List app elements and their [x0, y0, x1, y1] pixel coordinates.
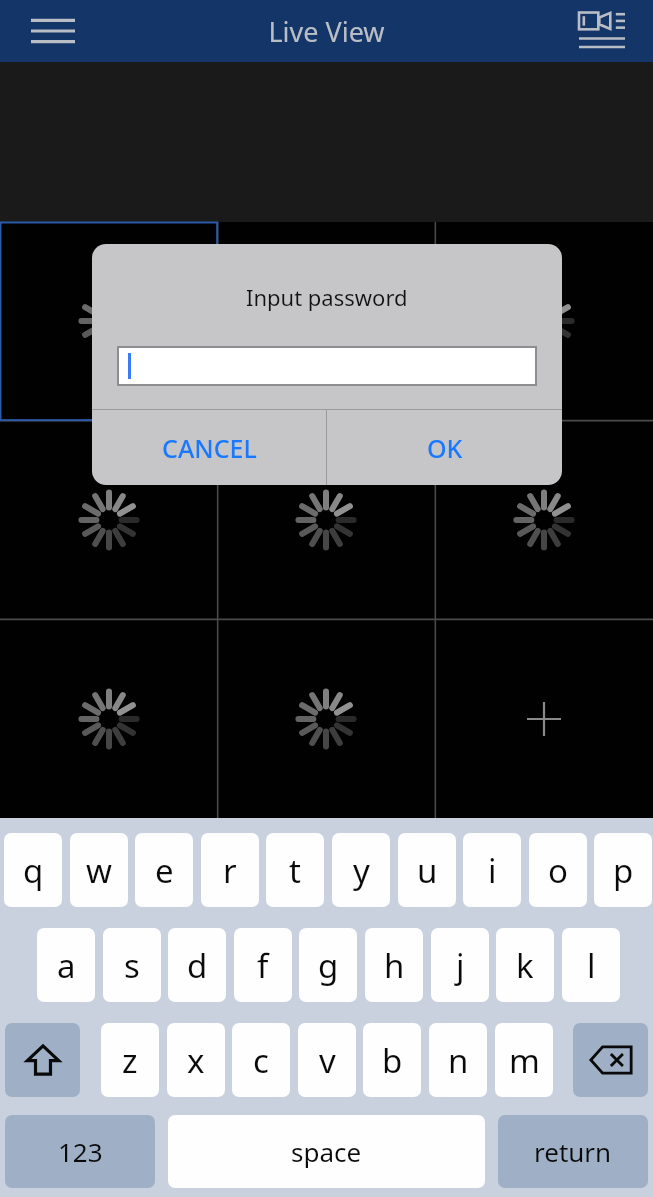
button[interactable]: p	[594, 833, 652, 907]
button[interactable]: e	[135, 833, 193, 907]
button[interactable]: 123	[5, 1115, 155, 1188]
staticText: space	[291, 1134, 362, 1169]
button[interactable]: CANCEL	[92, 410, 326, 485]
button[interactable]: v	[298, 1023, 356, 1097]
button[interactable]: a	[37, 928, 95, 1002]
button[interactable]: w	[70, 833, 128, 907]
button[interactable]: c	[232, 1023, 290, 1097]
staticText: z	[122, 1038, 138, 1083]
button[interactable]: space	[168, 1115, 485, 1188]
staticText: k	[516, 943, 534, 988]
staticText: g	[318, 943, 339, 988]
button[interactable]: x	[167, 1023, 225, 1097]
button[interactable]	[0, 420, 217, 619]
button[interactable]: Shift	[5, 1023, 80, 1097]
staticText: p	[613, 848, 634, 893]
staticText: CANCEL	[162, 431, 257, 465]
staticText: v	[319, 1038, 336, 1083]
button[interactable]: k	[496, 928, 554, 1002]
staticText: o	[548, 848, 568, 893]
staticText: w	[86, 848, 112, 893]
button[interactable]	[435, 619, 653, 818]
button[interactable]: n	[429, 1023, 487, 1097]
button[interactable]: t	[266, 833, 324, 907]
staticText: d	[187, 943, 208, 988]
staticText: OK	[427, 431, 463, 465]
staticText: x	[187, 1038, 205, 1083]
staticText: h	[384, 943, 405, 988]
button[interactable]	[435, 222, 653, 420]
button[interactable]	[119, 348, 535, 384]
button[interactable]: Backspace	[573, 1023, 648, 1097]
button[interactable]: y	[332, 833, 390, 907]
staticText: return	[534, 1134, 612, 1169]
staticText: q	[23, 848, 44, 893]
button[interactable]	[217, 420, 435, 619]
button[interactable]	[217, 619, 435, 818]
staticText: y	[353, 848, 370, 893]
button[interactable]: o	[529, 833, 587, 907]
staticText: Live View	[268, 13, 385, 50]
button[interactable]: OK	[327, 410, 562, 485]
button[interactable]: i	[463, 833, 521, 907]
staticText: Input password	[246, 282, 408, 312]
staticText: 123	[58, 1134, 103, 1169]
staticText: l	[587, 943, 596, 988]
button[interactable]: j	[431, 928, 489, 1002]
staticText: u	[417, 848, 438, 893]
staticText: m	[509, 1038, 540, 1083]
staticText: a	[57, 943, 76, 988]
button[interactable]: m	[495, 1023, 553, 1097]
button[interactable]	[435, 420, 653, 619]
staticText: t	[289, 848, 301, 893]
button[interactable]: return	[498, 1115, 648, 1188]
staticText: c	[253, 1038, 269, 1083]
button[interactable]: u	[398, 833, 456, 907]
button[interactable]: b	[363, 1023, 421, 1097]
button[interactable]	[0, 619, 217, 818]
button[interactable]: l	[562, 928, 620, 1002]
staticText: e	[155, 848, 174, 893]
button[interactable]: h	[365, 928, 423, 1002]
button[interactable]: s	[103, 928, 161, 1002]
button[interactable]: z	[101, 1023, 159, 1097]
staticText: s	[124, 943, 140, 988]
staticText: b	[382, 1038, 403, 1083]
button[interactable]: Recordings	[571, 0, 633, 62]
staticText: j	[456, 943, 465, 988]
button[interactable]: Menu	[22, 0, 84, 62]
button[interactable]: g	[299, 928, 357, 1002]
staticText: n	[448, 1038, 469, 1083]
button[interactable]	[0, 222, 217, 420]
staticText: r	[223, 848, 237, 893]
button[interactable]: d	[168, 928, 226, 1002]
button[interactable]: q	[4, 833, 62, 907]
button[interactable]: f	[234, 928, 292, 1002]
staticText: i	[488, 848, 497, 893]
staticText: f	[257, 943, 269, 988]
button[interactable]	[217, 222, 435, 420]
button[interactable]: r	[201, 833, 259, 907]
